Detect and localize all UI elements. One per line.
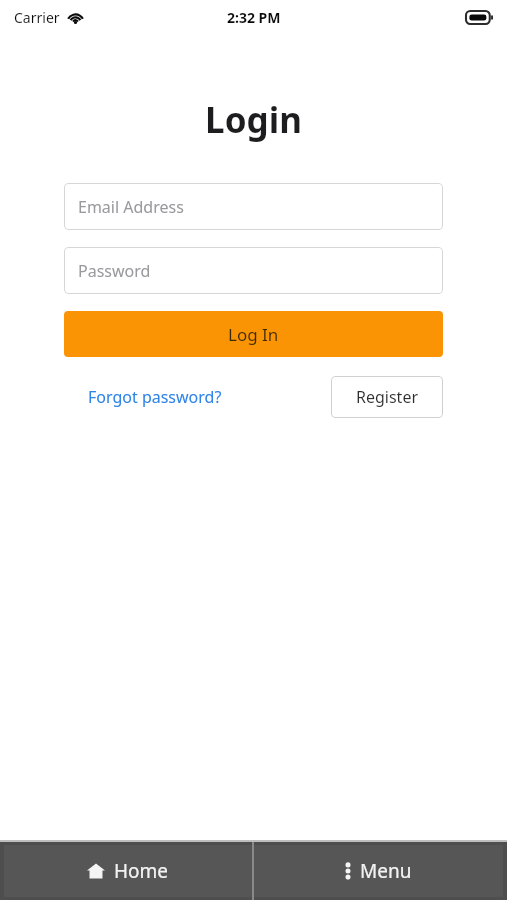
staticText: Forgot password? <box>88 386 222 408</box>
staticText: Menu <box>360 858 412 884</box>
staticText: Email Address <box>78 196 184 218</box>
staticText: Login <box>0 96 507 144</box>
button[interactable]: Log In <box>64 311 443 357</box>
button[interactable]: Email Address <box>64 183 443 230</box>
button[interactable]: Home <box>4 845 252 897</box>
staticText: Carrier <box>14 8 60 27</box>
staticText: Password <box>78 260 151 282</box>
staticText: 2:32 PM <box>227 8 281 27</box>
other: Home <box>87 862 105 880</box>
button[interactable]: Forgot password? <box>64 376 246 418</box>
staticText: Home <box>114 858 169 884</box>
button[interactable]: Register <box>331 376 443 418</box>
staticText: Register <box>356 386 419 408</box>
other: Menu <box>345 862 351 880</box>
button[interactable]: Menu <box>254 845 503 897</box>
staticText: Log In <box>228 323 279 346</box>
button[interactable]: Password <box>64 247 443 294</box>
